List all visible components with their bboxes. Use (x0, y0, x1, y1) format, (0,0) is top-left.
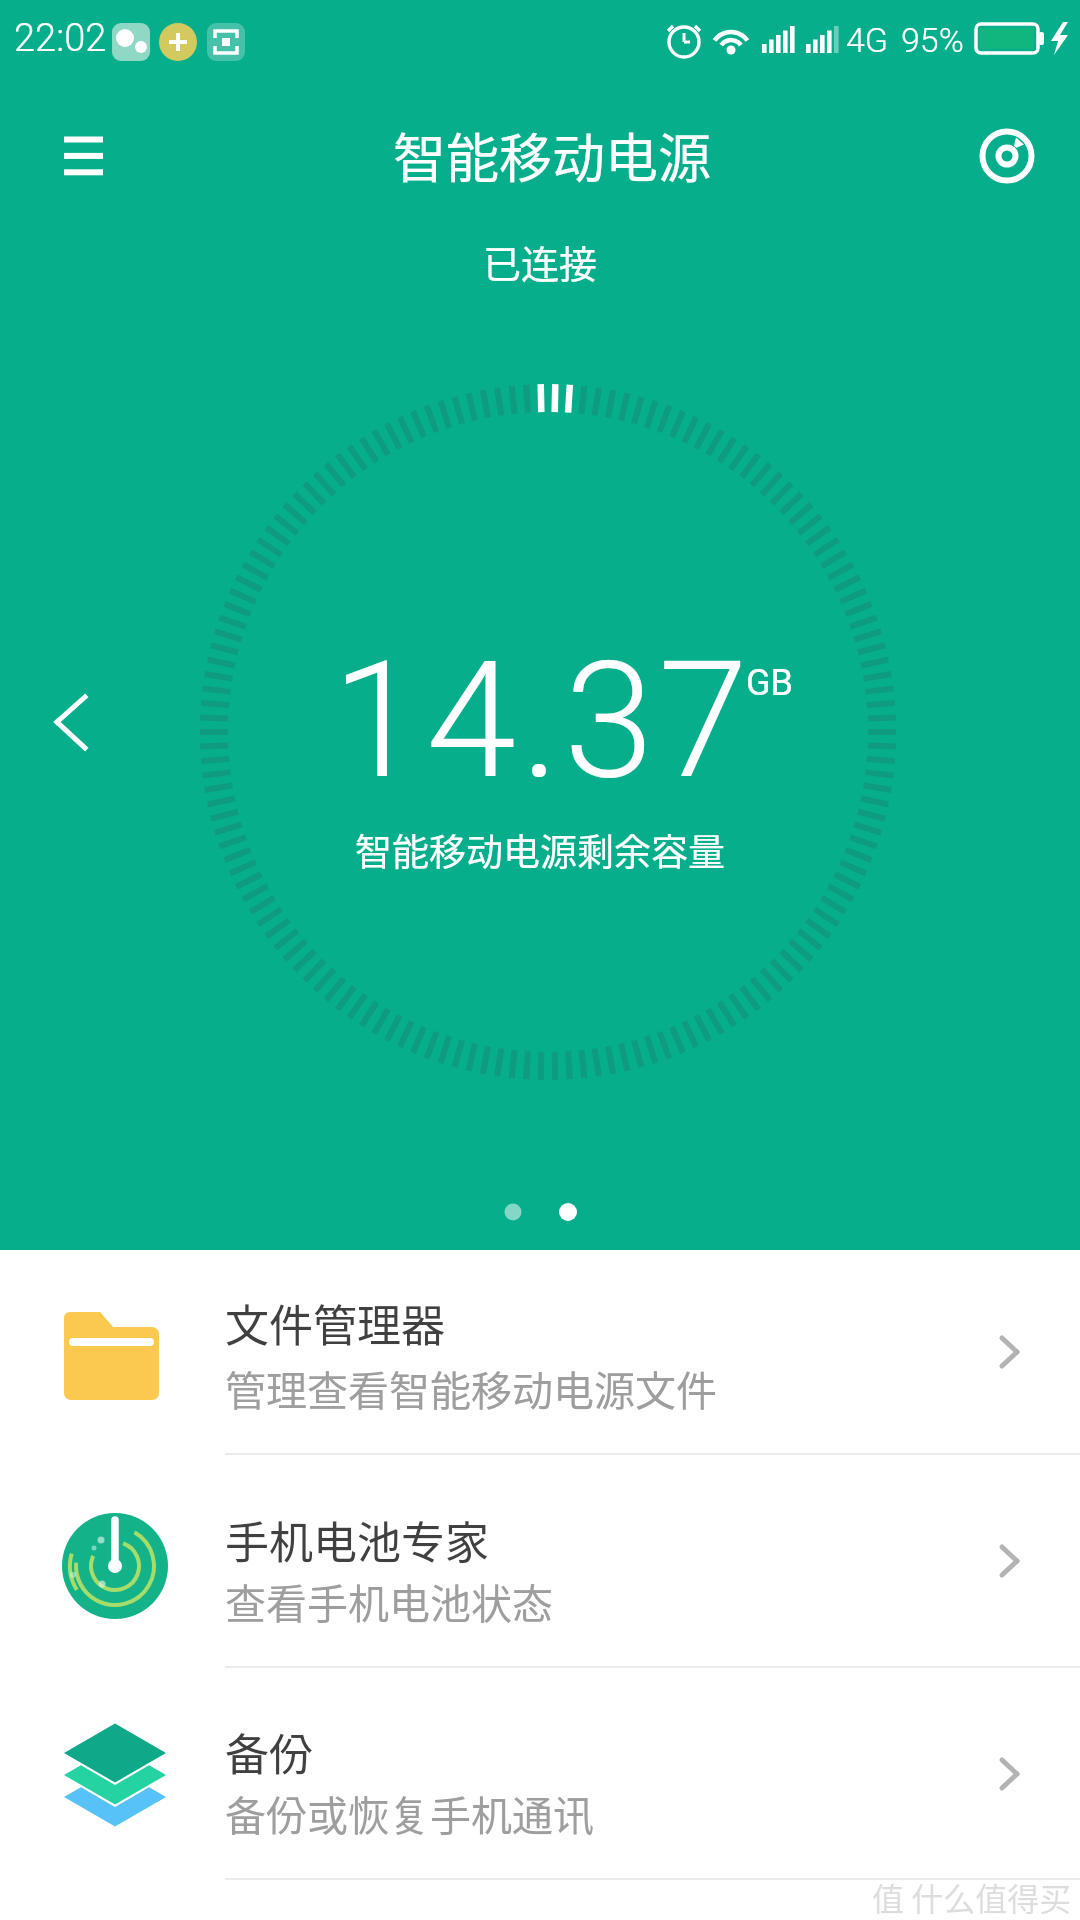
staticText: 智能移动电源 (393, 117, 711, 194)
staticText: 管理查看智能移动电源文件 (225, 1358, 717, 1417)
button[interactable]: 手机电池专家 (0, 1455, 1080, 1668)
staticText: 查看手机电池状态 (225, 1571, 553, 1630)
staticText: 手机电池专家 (225, 1508, 489, 1572)
staticText: 文件管理器 (225, 1291, 445, 1355)
button[interactable]: 备份 (0, 1668, 1080, 1880)
button[interactable]: 文件管理器 (0, 1250, 1080, 1455)
staticText: 4G (846, 20, 889, 60)
staticText: 22:02 (14, 16, 107, 61)
staticText: GB (746, 662, 793, 704)
button[interactable] (48, 122, 118, 192)
staticText: 已连接 (483, 234, 598, 289)
button[interactable] (38, 688, 100, 754)
staticText: 备份 (225, 1720, 313, 1784)
button[interactable] (975, 124, 1039, 188)
staticText: 备份或恢复手机通讯 (225, 1783, 594, 1842)
staticText: 14.37 (332, 626, 753, 816)
staticText: 值 什么值得买 (872, 1874, 1072, 1914)
staticText: 95% (901, 20, 964, 60)
staticText: 智能移动电源剩余容量 (355, 823, 725, 877)
